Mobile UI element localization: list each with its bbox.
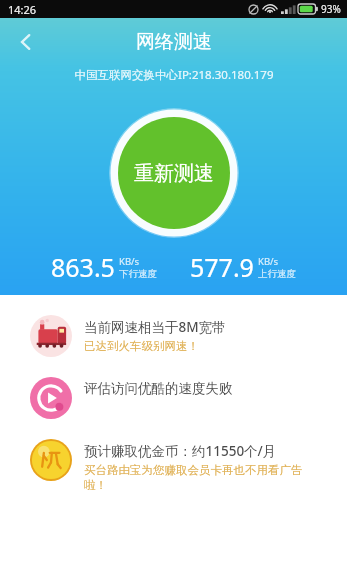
staticText: 当前网速相当于8M宽带 xyxy=(84,318,226,336)
staticText: 14:26 xyxy=(8,2,37,17)
button[interactable]: 重新测速 xyxy=(109,108,239,238)
staticText: 重新测速 xyxy=(134,161,214,186)
staticText: 下行速度 xyxy=(119,268,157,280)
staticText: 网络测速 xyxy=(136,30,212,54)
staticText: KB/s xyxy=(258,255,279,268)
staticText: KB/s xyxy=(119,255,140,268)
staticText: 863.5 xyxy=(51,250,115,284)
staticText: 中国互联网交换中心IP:218.30.180.179 xyxy=(74,67,274,83)
staticText: 预计赚取优金币：约11550个/月 xyxy=(84,442,277,460)
staticText: 评估访问优酷的速度失败 xyxy=(84,380,233,397)
staticText: 买台路由宝为您赚取会员卡再也不用看广告 啦！ xyxy=(84,463,303,493)
staticText: 577.9 xyxy=(190,250,254,284)
button[interactable]: Back xyxy=(6,22,46,62)
staticText: 93% xyxy=(321,2,341,16)
staticText: 已达到火车级别网速！ xyxy=(84,339,199,353)
staticText: 上行速度 xyxy=(258,268,296,280)
button[interactable]: 预计赚取优金币：约11550个/月 xyxy=(0,435,347,497)
button[interactable]: 当前网速相当于8M宽带 xyxy=(0,311,347,361)
button[interactable]: 评估访问优酷的速度失败 xyxy=(0,373,347,423)
